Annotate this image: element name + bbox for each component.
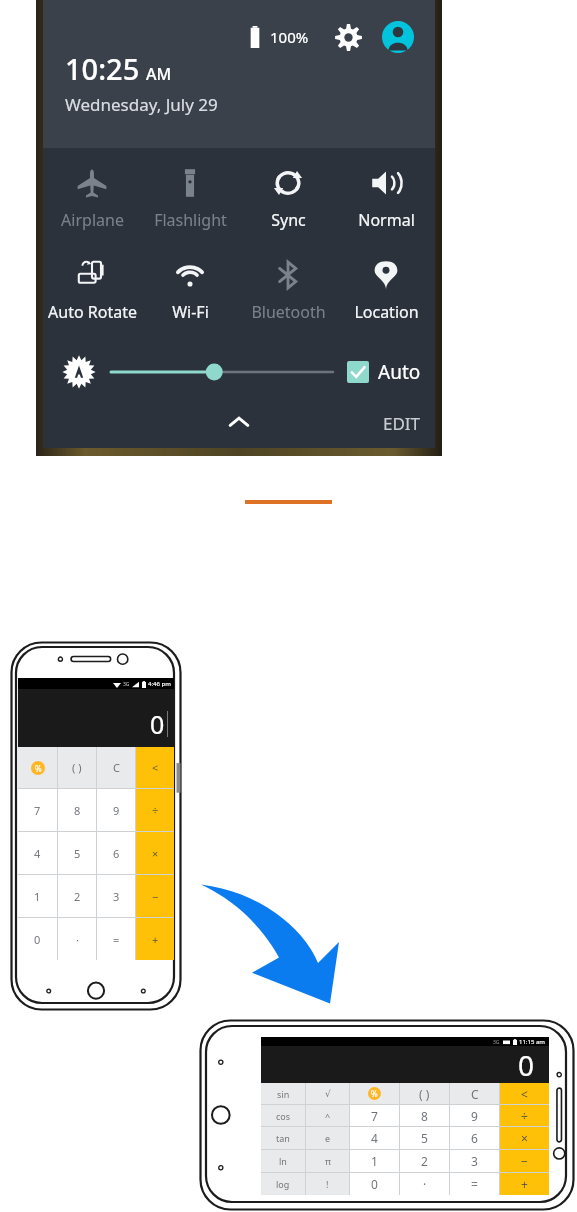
button[interactable]: 4 xyxy=(350,1127,399,1149)
button[interactable]: Sync xyxy=(239,160,337,252)
staticText: % xyxy=(35,763,42,774)
button[interactable]: 5 xyxy=(58,832,96,874)
staticText: Airplane xyxy=(61,209,124,231)
staticText: < xyxy=(152,760,159,775)
staticText: 3G xyxy=(123,681,130,688)
button[interactable]: 2 xyxy=(58,875,96,917)
staticText: √ xyxy=(325,1089,331,1099)
button[interactable]: 4 xyxy=(18,832,57,874)
button[interactable]: 1 xyxy=(18,875,57,917)
staticText: 6 xyxy=(471,1130,478,1146)
button[interactable]: < xyxy=(136,747,174,788)
staticText: ^ xyxy=(325,1110,331,1122)
staticText: 0 xyxy=(150,707,165,741)
staticText: Wednesday, July 29 xyxy=(65,93,218,116)
staticText: 11:15 am xyxy=(519,1038,545,1046)
button[interactable]: 9 xyxy=(97,789,135,831)
button[interactable]: Flashlight xyxy=(141,160,239,252)
button[interactable]: 3 xyxy=(450,1150,499,1172)
staticText: × xyxy=(152,846,159,861)
button[interactable]: tan xyxy=(261,1127,305,1149)
button[interactable]: 0 xyxy=(18,918,57,960)
button[interactable]: C xyxy=(97,747,135,788)
staticText: 6 xyxy=(113,846,120,861)
staticText: cos xyxy=(276,1110,291,1122)
button[interactable]: ln xyxy=(261,1150,305,1172)
button[interactable]: 8 xyxy=(58,789,96,831)
staticText: 2 xyxy=(74,889,81,904)
button[interactable]: − xyxy=(500,1150,549,1172)
staticText: · xyxy=(76,932,79,947)
button[interactable]: ^ xyxy=(306,1105,349,1126)
button[interactable]: 7 xyxy=(18,789,57,831)
staticText: 7 xyxy=(371,1108,378,1124)
button[interactable]: EDIT xyxy=(383,412,421,435)
staticText: tan xyxy=(276,1132,290,1144)
button[interactable]: % xyxy=(350,1083,399,1104)
button[interactable]: = xyxy=(97,918,135,960)
button[interactable]: ( ) xyxy=(400,1083,449,1104)
staticText: 4 xyxy=(371,1130,378,1146)
button[interactable]: − xyxy=(136,875,174,917)
button[interactable]: Settings xyxy=(331,20,365,54)
button[interactable]: Bluetooth xyxy=(239,252,337,344)
button[interactable]: + xyxy=(136,918,174,960)
button[interactable]: < xyxy=(500,1083,549,1104)
staticText: 3G xyxy=(493,1039,500,1046)
staticText: 0 xyxy=(34,932,41,947)
staticText: Bluetooth xyxy=(251,301,326,323)
staticText: AM xyxy=(146,63,172,85)
button[interactable]: Wi-Fi xyxy=(141,252,239,344)
staticText: 4:46 pm xyxy=(148,680,171,688)
button[interactable]: Auto xyxy=(347,359,421,385)
staticText: ÷ xyxy=(152,803,159,818)
button[interactable]: · xyxy=(400,1173,449,1195)
button[interactable]: sin xyxy=(261,1083,305,1104)
button[interactable]: 7 xyxy=(350,1105,399,1126)
button[interactable]: 5 xyxy=(400,1127,449,1149)
button[interactable]: + xyxy=(500,1173,549,1195)
button[interactable]: × xyxy=(500,1127,549,1149)
button[interactable]: ! xyxy=(306,1173,349,1195)
button[interactable]: ( ) xyxy=(58,747,96,788)
button[interactable]: 6 xyxy=(450,1127,499,1149)
button[interactable]: log xyxy=(261,1173,305,1195)
button[interactable]: e xyxy=(306,1127,349,1149)
button[interactable]: × xyxy=(136,832,174,874)
button[interactable]: ÷ xyxy=(136,789,174,831)
button[interactable]: % xyxy=(18,747,57,788)
button[interactable]: · xyxy=(58,918,96,960)
button[interactable]: Airplane xyxy=(43,160,141,252)
staticText: Auto Rotate xyxy=(48,301,137,323)
button[interactable]: √ xyxy=(306,1083,349,1104)
staticText: Flashlight xyxy=(154,209,227,231)
button[interactable]: π xyxy=(306,1150,349,1172)
staticText: C xyxy=(113,760,120,775)
button[interactable]: C xyxy=(450,1083,499,1104)
button[interactable]: 2 xyxy=(400,1150,449,1172)
button[interactable]: 0 xyxy=(350,1173,399,1195)
button[interactable]: 6 xyxy=(97,832,135,874)
button[interactable]: Location xyxy=(337,252,435,344)
button[interactable]: Brightness xyxy=(59,352,99,392)
staticText: 8 xyxy=(74,803,81,818)
button[interactable]: 9 xyxy=(450,1105,499,1126)
button[interactable]: Normal xyxy=(337,160,435,252)
staticText: 0 xyxy=(518,1046,535,1083)
button[interactable]: User profile xyxy=(381,20,415,54)
button[interactable]: Collapse xyxy=(216,400,262,446)
button[interactable]: ÷ xyxy=(500,1105,549,1126)
staticText: = xyxy=(113,932,120,947)
button[interactable]: 3 xyxy=(97,875,135,917)
button[interactable] xyxy=(111,357,333,387)
button[interactable]: 8 xyxy=(400,1105,449,1126)
staticText: ln xyxy=(279,1155,287,1167)
button[interactable]: cos xyxy=(261,1105,305,1126)
staticText: = xyxy=(471,1176,478,1192)
button[interactable]: Auto Rotate xyxy=(43,252,141,344)
button[interactable]: = xyxy=(450,1173,499,1195)
staticText: × xyxy=(521,1130,528,1146)
staticText: 8 xyxy=(421,1108,428,1124)
button[interactable]: 1 xyxy=(350,1150,399,1172)
staticText: 5 xyxy=(74,846,81,861)
